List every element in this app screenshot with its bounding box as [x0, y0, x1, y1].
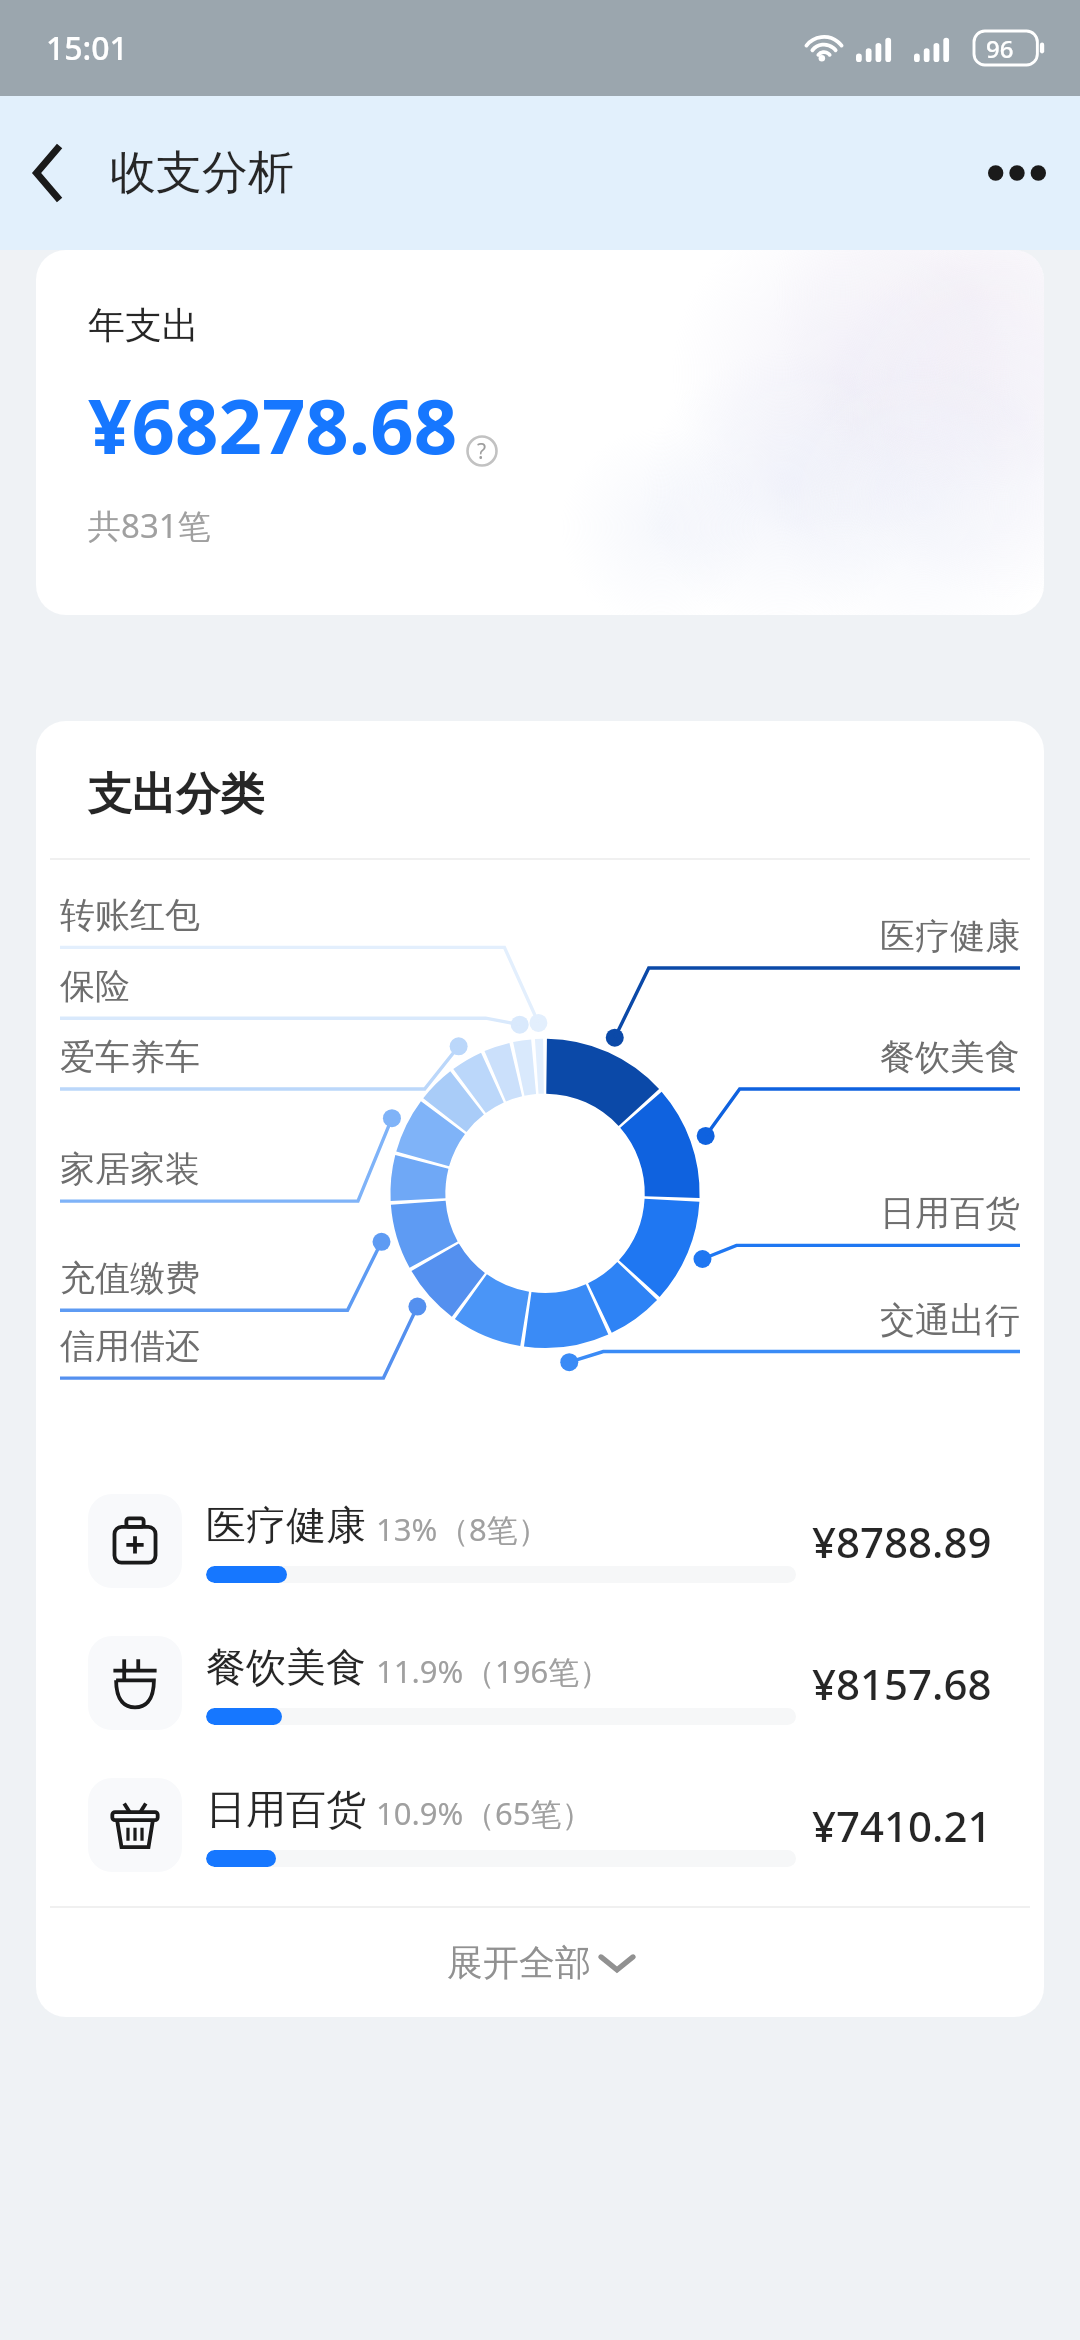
- staticText: 转账红包: [60, 893, 200, 937]
- staticText: 展开全部: [447, 1940, 591, 1985]
- staticText: 交通出行: [880, 1298, 1020, 1342]
- button[interactable]: Help: [466, 435, 498, 467]
- staticText: 共831笔: [88, 503, 211, 548]
- button[interactable]: 餐饮美食: [36, 1612, 1044, 1754]
- staticText: 日用百货: [206, 1784, 366, 1834]
- staticText: 查电子账单得绿色能量8g: [381, 529, 751, 574]
- staticText: 11.9%: [376, 1650, 464, 1692]
- staticText: 医疗健康: [880, 914, 1020, 958]
- button[interactable]: 查电子账单得绿色能量8g: [329, 529, 751, 574]
- staticText: （8笔）: [438, 1508, 549, 1550]
- staticText: 餐饮美食: [206, 1642, 366, 1692]
- staticText: 信用借还: [60, 1324, 200, 1368]
- staticText: （196笔）: [464, 1650, 611, 1692]
- staticText: 餐饮美食: [880, 1035, 1020, 1079]
- staticText: 日用百货: [880, 1191, 1020, 1235]
- staticText: 收支分析: [110, 144, 294, 202]
- button[interactable]: 日用百货: [36, 1754, 1044, 1896]
- button[interactable]: Back: [0, 122, 82, 224]
- staticText: 10.9%: [376, 1792, 464, 1834]
- staticText: 13%: [376, 1508, 438, 1550]
- button[interactable]: 年支出: [36, 250, 1044, 615]
- staticText: 医疗健康: [206, 1500, 366, 1550]
- staticText: ¥7410.21: [812, 1797, 992, 1854]
- button[interactable]: More options: [954, 135, 1080, 211]
- staticText: 支出分类: [88, 767, 264, 822]
- staticText: 爱车养车: [60, 1035, 200, 1079]
- staticText: ¥8157.68: [812, 1655, 992, 1712]
- staticText: 96: [986, 32, 1014, 65]
- staticText: ¥68278.68: [88, 373, 458, 477]
- staticText: 年支出: [88, 302, 199, 349]
- staticText: 家居家装: [60, 1147, 200, 1191]
- button[interactable]: 医疗健康: [36, 1470, 1044, 1612]
- staticText: ¥8788.89: [812, 1513, 992, 1570]
- staticText: （65笔）: [464, 1792, 593, 1834]
- staticText: 充值缴费: [60, 1256, 200, 1300]
- staticText: 保险: [60, 964, 130, 1008]
- staticText: ?: [477, 437, 487, 466]
- button[interactable]: 展开全部: [36, 1908, 1044, 2017]
- staticText: 15:01: [46, 26, 128, 70]
